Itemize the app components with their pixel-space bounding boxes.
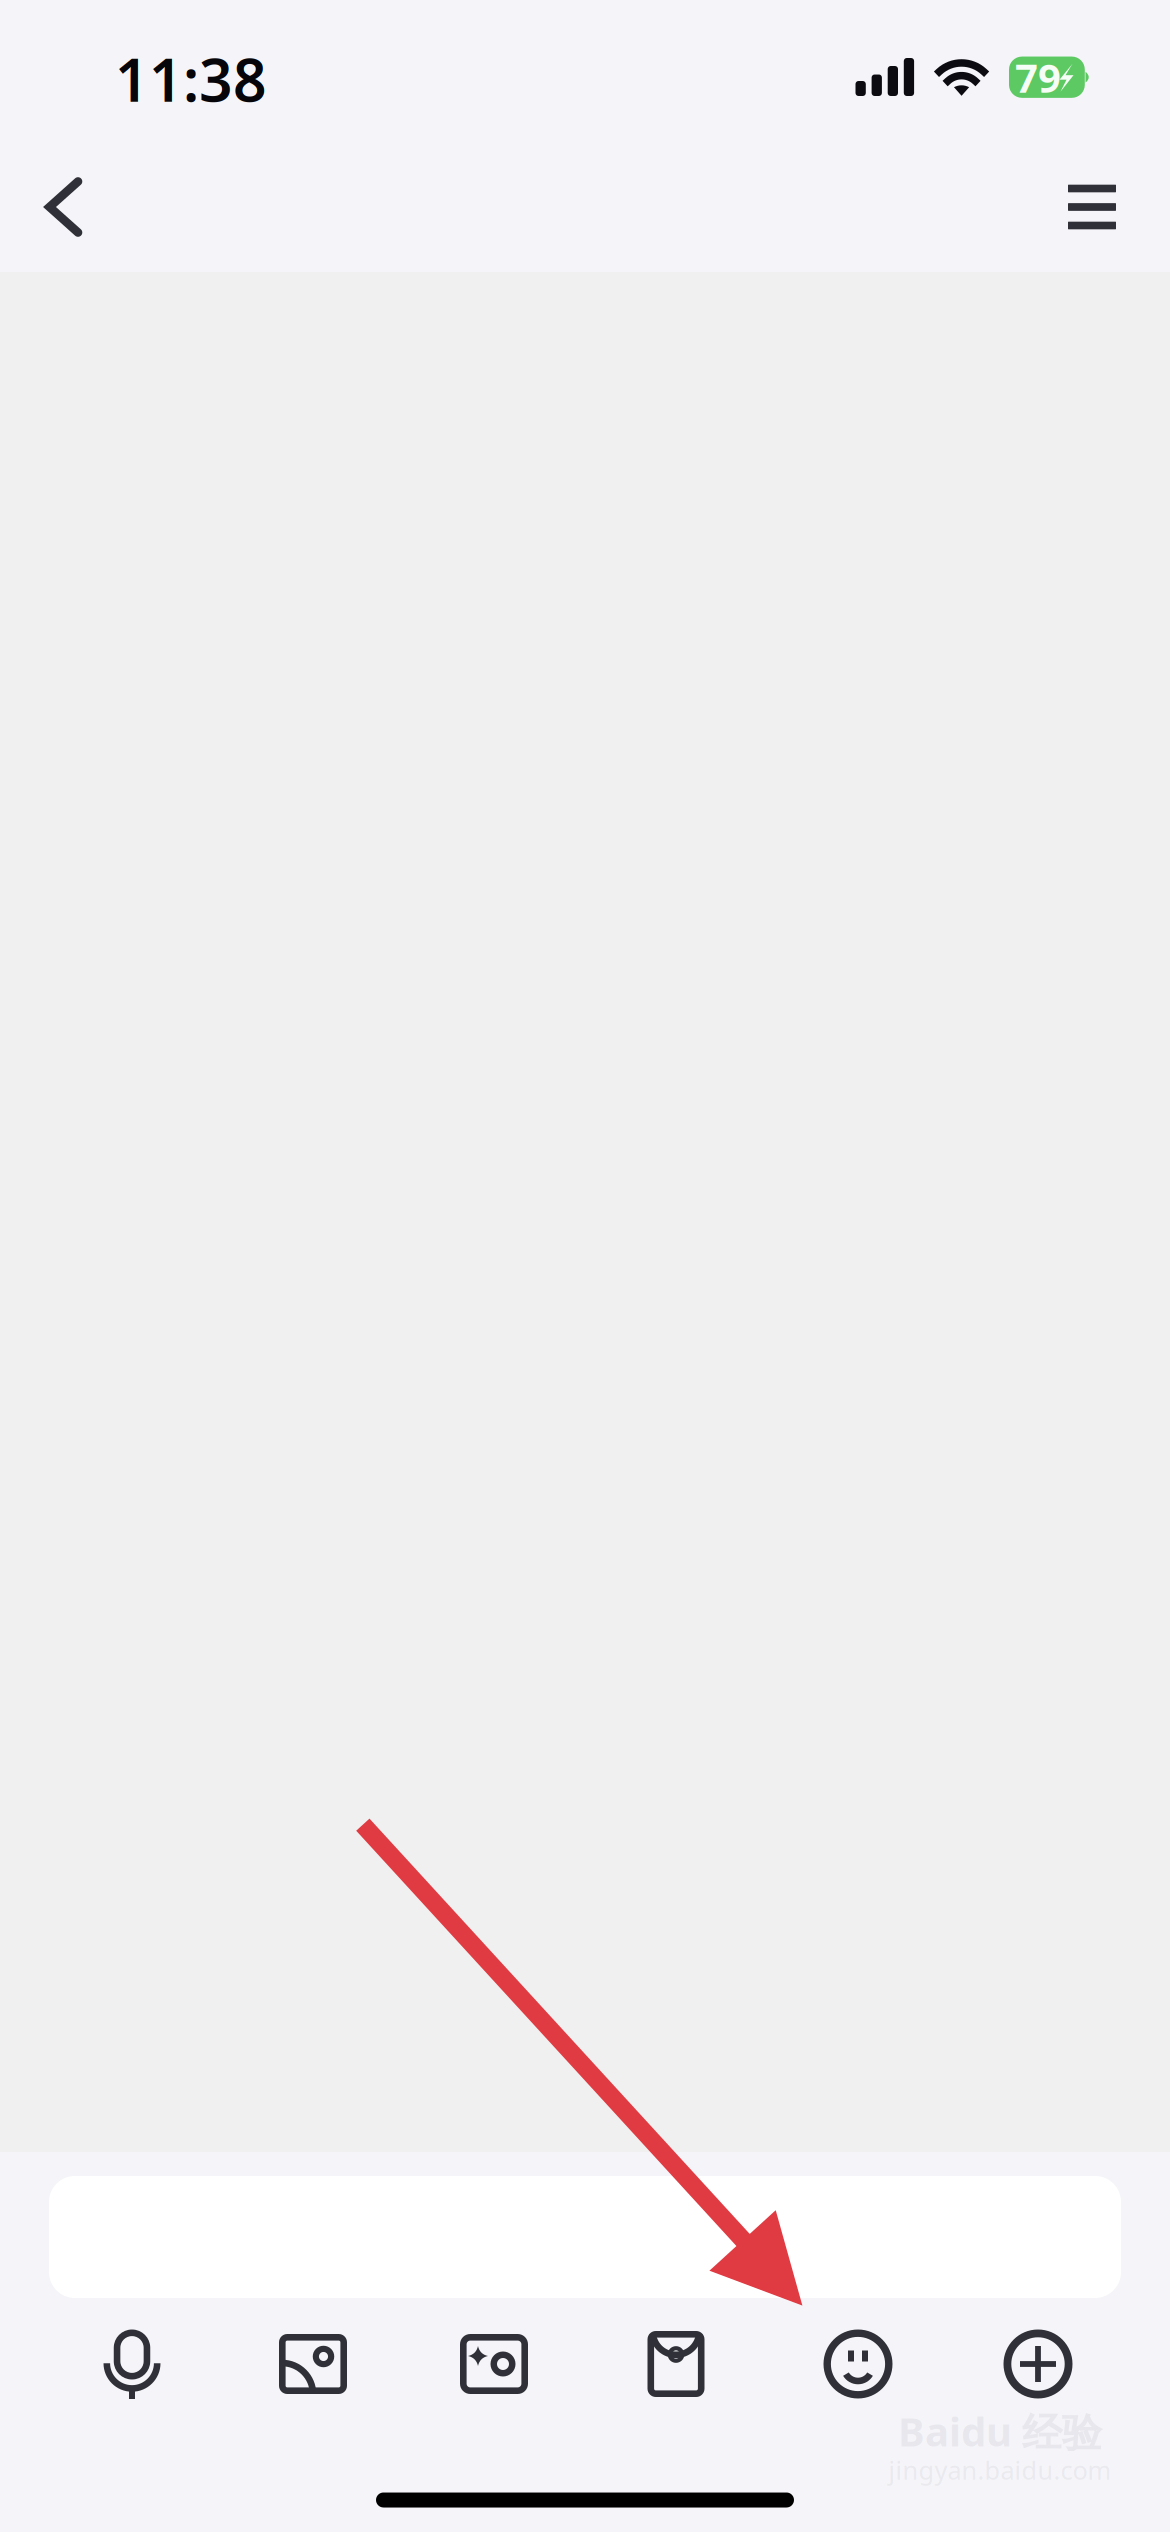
- staticText: 79: [1015, 51, 1061, 104]
- button[interactable]: Voice message: [57, 2300, 207, 2428]
- button[interactable]: Photos: [238, 2300, 388, 2428]
- button[interactable]: More: [1033, 151, 1151, 263]
- button[interactable]: Message input: [49, 2176, 1121, 2298]
- staticText: 11:38: [115, 40, 267, 118]
- button[interactable]: Emoji: [783, 2300, 933, 2428]
- button[interactable]: Stickers: [419, 2300, 569, 2428]
- staticText: Baidu 经验: [898, 2404, 1102, 2458]
- button[interactable]: More options: [963, 2300, 1113, 2428]
- staticText: jingyan.baidu.com: [888, 2453, 1111, 2487]
- button[interactable]: Back: [5, 151, 123, 263]
- button[interactable]: Red packet: [601, 2300, 751, 2428]
